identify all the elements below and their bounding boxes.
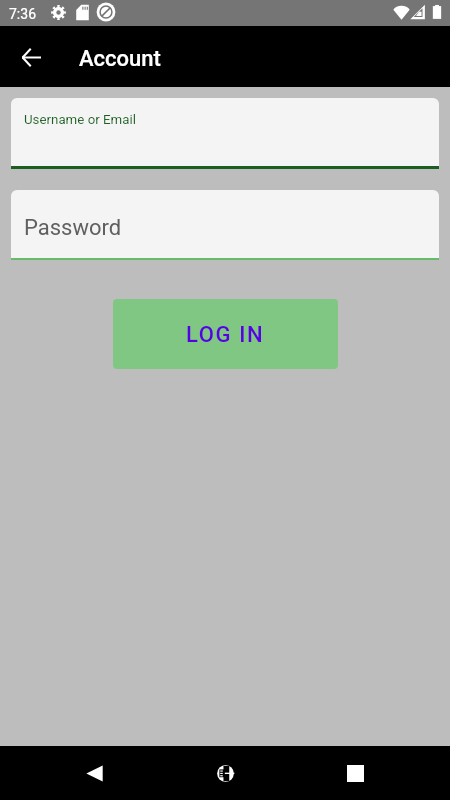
- button[interactable]: Back: [70, 749, 118, 797]
- button[interactable]: Recent apps: [331, 749, 379, 797]
- staticText: Account: [79, 46, 161, 72]
- button[interactable]: Back: [0, 26, 62, 87]
- staticText: Password: [24, 215, 122, 241]
- button[interactable]: Home: [201, 749, 249, 797]
- button[interactable]: Password: [11, 190, 439, 260]
- button[interactable]: LOG IN: [113, 299, 338, 369]
- staticText: LOG IN: [186, 322, 265, 348]
- staticText: 7:36: [9, 6, 36, 22]
- staticText: Username or Email: [24, 112, 136, 128]
- button[interactable]: Username or Email: [11, 98, 439, 169]
